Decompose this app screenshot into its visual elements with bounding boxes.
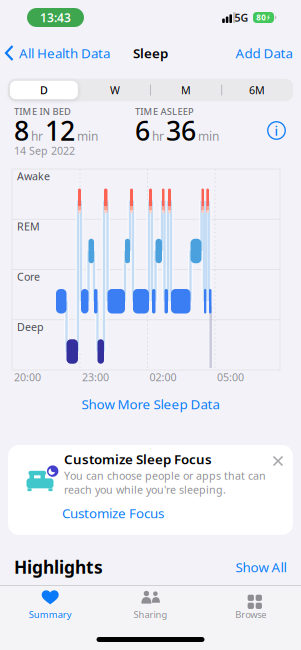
staticText: Highlights: [14, 555, 103, 578]
staticText: 23:00: [82, 370, 109, 384]
button[interactable]: Show More Sleep Data: [81, 395, 219, 413]
button[interactable]: Show All: [235, 558, 286, 576]
staticText: 6M: [249, 83, 265, 97]
staticText: 12: [45, 113, 75, 148]
staticText: Deep: [17, 320, 44, 334]
staticText: Browse: [235, 608, 266, 621]
staticText: 80: [256, 12, 266, 23]
staticText: TIME IN BED: [14, 105, 71, 118]
staticText: 6: [135, 113, 150, 148]
staticText: i: [274, 122, 278, 139]
staticText: All Health Data: [19, 44, 110, 62]
staticText: 14 Sep 2022: [14, 143, 75, 158]
button[interactable]: Return to call: [27, 8, 84, 27]
staticText: 02:00: [149, 370, 176, 384]
staticText: Customize Sleep Focus: [64, 450, 212, 468]
staticText: hr: [152, 128, 164, 144]
staticText: Customize Focus: [62, 504, 164, 522]
staticText: Show All: [235, 558, 286, 576]
staticText: You can choose people or apps that can: [64, 468, 266, 483]
staticText: Sharing: [133, 608, 167, 621]
button[interactable]: Summary: [29, 590, 72, 621]
staticText: Show More Sleep Data: [81, 395, 219, 413]
staticText: W: [110, 83, 120, 97]
staticText: REM: [17, 219, 40, 233]
staticText: min: [198, 128, 219, 144]
staticText: Awake: [17, 169, 50, 183]
staticText: 5G: [234, 10, 248, 25]
staticText: Core: [17, 269, 40, 284]
staticText: 20:00: [14, 370, 41, 384]
staticText: 05:00: [217, 370, 244, 384]
button[interactable]: Customize Focus: [62, 504, 164, 522]
button[interactable]: More information: [268, 122, 285, 139]
staticText: D: [40, 83, 48, 97]
button[interactable]: M: [156, 80, 216, 100]
button[interactable]: Browse: [235, 590, 266, 621]
staticText: reach you while you're sleeping.: [64, 482, 226, 497]
staticText: 36: [166, 113, 196, 148]
button[interactable]: All Health Data: [6, 44, 110, 62]
staticText: M: [181, 83, 191, 97]
button[interactable]: D: [10, 81, 78, 99]
staticText: min: [77, 128, 98, 144]
staticText: Add Data: [235, 44, 292, 62]
button[interactable]: 6M: [227, 80, 287, 100]
button[interactable]: W: [85, 80, 145, 100]
button[interactable]: Sharing: [133, 590, 167, 621]
staticText: Summary: [29, 608, 72, 621]
staticText: Sleep: [133, 44, 168, 62]
button[interactable]: Add Data: [235, 44, 292, 62]
staticText: 13:43: [40, 9, 71, 25]
staticText: hr: [31, 128, 43, 144]
button[interactable]: Dismiss: [267, 450, 288, 471]
staticText: 8: [14, 113, 29, 148]
staticText: TIME ASLEEP: [135, 105, 194, 118]
